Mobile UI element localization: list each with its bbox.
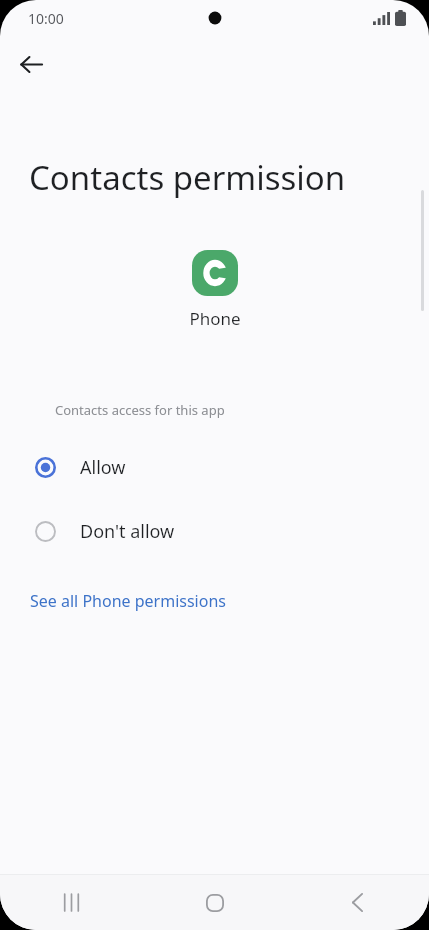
button[interactable]: Back [286, 875, 429, 930]
button[interactable]: Recent apps [0, 875, 143, 930]
button[interactable]: Don't allow [0, 499, 429, 563]
button[interactable]: See all Phone permissions [16, 583, 240, 619]
button[interactable]: Navigate up [9, 42, 53, 86]
button[interactable]: Home [143, 875, 286, 930]
staticText: Phone [189, 307, 241, 330]
staticText: 10:00 [28, 9, 64, 28]
staticText: Contacts access for this app [55, 401, 225, 419]
staticText: Don't allow [80, 519, 175, 544]
button[interactable]: Allow [0, 435, 429, 499]
staticText: Contacts permission [29, 155, 346, 200]
staticText: See all Phone permissions [30, 590, 226, 612]
staticText: Allow [80, 455, 126, 480]
